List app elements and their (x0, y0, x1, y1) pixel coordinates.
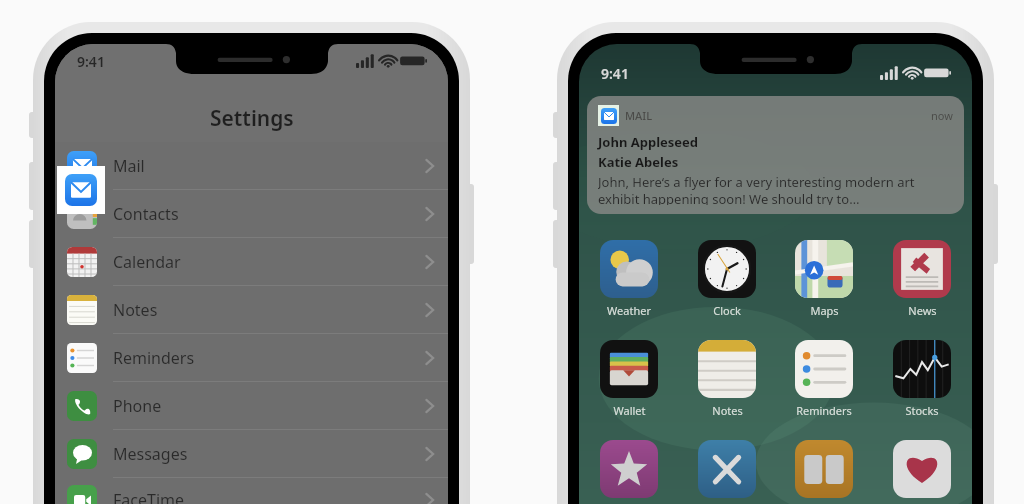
button[interactable]: Weather (593, 240, 665, 318)
button[interactable]: Contacts (55, 190, 448, 238)
button[interactable]: MAIL (587, 96, 964, 214)
staticText: Calendar (113, 251, 181, 273)
button[interactable]: Notes (55, 286, 448, 334)
other: Mail settings highlighted (57, 166, 105, 214)
staticText: Wallet (613, 403, 646, 418)
staticText: News (908, 303, 937, 318)
staticText: John, Here‘s a flyer for a very interest… (598, 173, 953, 205)
button[interactable] (886, 440, 958, 498)
staticText: Settings (210, 104, 294, 133)
staticText: Notes (712, 403, 743, 418)
staticText: Contacts (113, 203, 179, 225)
button[interactable]: FaceTime (55, 478, 448, 504)
staticText: 9:41 (77, 52, 105, 71)
staticText: Clock (713, 303, 741, 318)
staticText: now (931, 108, 953, 123)
button[interactable]: Maps (788, 240, 860, 318)
staticText: Reminders (796, 403, 852, 418)
button[interactable]: Phone (55, 382, 448, 430)
button[interactable] (593, 440, 665, 498)
staticText: Reminders (113, 347, 195, 369)
staticText: Mail (113, 155, 145, 177)
button[interactable]: Mail (55, 142, 448, 190)
button[interactable]: Notes (691, 340, 763, 418)
button[interactable]: Reminders (788, 340, 860, 418)
button[interactable] (788, 440, 860, 498)
staticText: 9:41 (601, 64, 629, 83)
button[interactable]: Reminders (55, 334, 448, 382)
staticText: Phone (113, 395, 162, 417)
staticText: FaceTime (113, 489, 184, 504)
button[interactable]: Wallet (593, 340, 665, 418)
button[interactable] (691, 440, 763, 498)
staticText: MAIL (625, 108, 653, 123)
button[interactable]: Stocks (886, 340, 958, 418)
button[interactable]: Calendar (55, 238, 448, 286)
staticText: Messages (113, 443, 188, 465)
staticText: Notes (113, 299, 158, 321)
staticText: Katie Abeles (598, 153, 679, 171)
button[interactable]: Messages (55, 430, 448, 478)
staticText: Maps (810, 303, 839, 318)
button[interactable]: Clock (691, 240, 763, 318)
staticText: Weather (607, 303, 651, 318)
button[interactable]: News (886, 240, 958, 318)
staticText: Stocks (905, 403, 939, 418)
staticText: John Appleseed (598, 133, 699, 151)
